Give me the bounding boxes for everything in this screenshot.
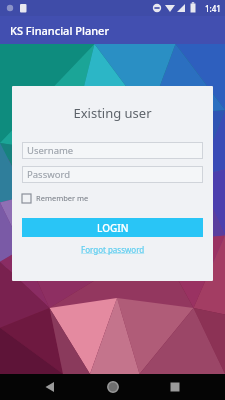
button[interactable]: Back xyxy=(37,374,63,400)
button[interactable]: LOGIN xyxy=(22,218,203,237)
button[interactable]: Recent apps xyxy=(162,374,188,400)
staticText: KS Financial Planer xyxy=(10,23,110,38)
staticText: 1:41 xyxy=(205,3,221,14)
button[interactable]: Remember me xyxy=(22,192,89,204)
button[interactable]: Username xyxy=(22,142,203,159)
button[interactable]: Password xyxy=(22,166,203,183)
staticText: LOGIN xyxy=(97,221,129,235)
staticText: Password xyxy=(27,168,70,181)
button[interactable]: Forgot password xyxy=(81,244,145,255)
button[interactable]: Home xyxy=(100,374,126,400)
staticText: Remember me xyxy=(36,193,89,203)
staticText: Existing user xyxy=(22,104,203,122)
staticText: Username xyxy=(27,144,74,157)
